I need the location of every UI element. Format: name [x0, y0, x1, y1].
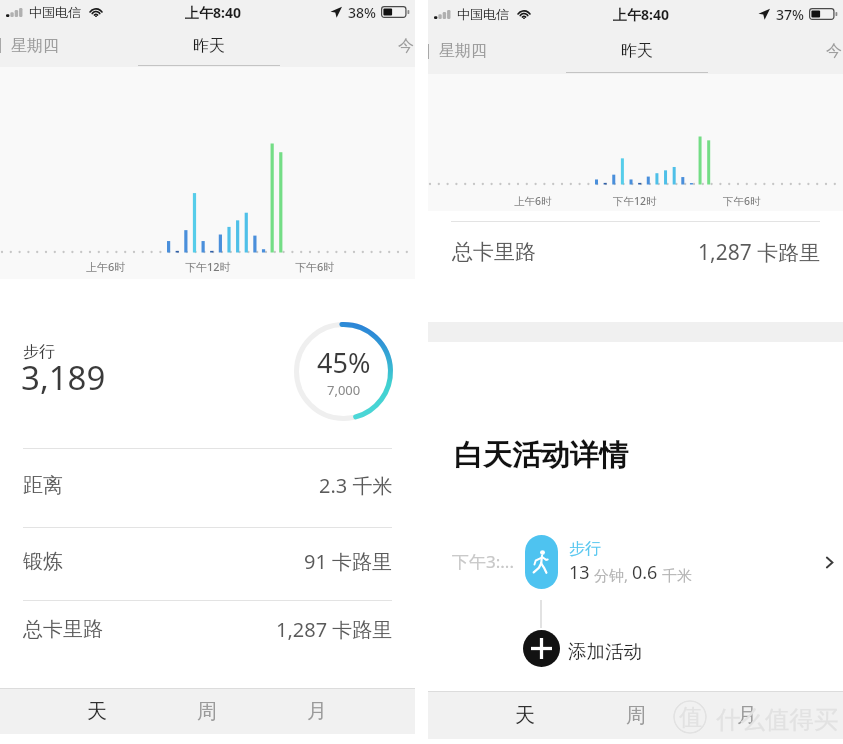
- button[interactable]: 总卡里路: [428, 222, 843, 286]
- staticText: 38%: [348, 3, 376, 22]
- button[interactable]: 星期四: [0, 24, 138, 67]
- staticText: 周: [626, 703, 646, 728]
- staticText: 值: [679, 703, 702, 732]
- staticText: 3,189: [21, 355, 106, 400]
- staticText: 上午8:40: [613, 5, 669, 24]
- button[interactable]: 距离: [0, 449, 415, 527]
- staticText: 月: [737, 703, 757, 728]
- staticText: 下午3:...: [452, 550, 514, 573]
- button[interactable]: 昨天: [566, 28, 708, 74]
- staticText: 总卡里路: [452, 239, 536, 265]
- staticText: 白天活动详情: [454, 437, 628, 474]
- staticText: 天: [87, 699, 107, 724]
- staticText: 昨天: [193, 36, 225, 56]
- staticText: 45%: [317, 344, 371, 381]
- staticText: 13: [569, 560, 590, 585]
- button[interactable]: 周: [606, 691, 666, 739]
- staticText: 锻炼: [23, 549, 63, 574]
- button[interactable]: 周: [177, 688, 237, 734]
- button[interactable]: 下午3:...: [428, 532, 843, 600]
- staticText: 步行: [569, 539, 601, 559]
- staticText: 月: [307, 699, 327, 724]
- staticText: 上午6时: [86, 259, 126, 274]
- staticText: 星期四: [11, 36, 59, 56]
- staticText: 上午8:40: [185, 3, 241, 22]
- other: 查看活动详情: [826, 557, 833, 568]
- staticText: 1,287 卡路里: [276, 616, 393, 643]
- staticText: 昨天: [621, 41, 653, 61]
- button[interactable]: 锻炼: [0, 528, 415, 600]
- button[interactable]: 今: [708, 28, 843, 74]
- staticText: 距离: [23, 473, 63, 498]
- button[interactable]: 天: [67, 688, 127, 734]
- staticText: 添加活动: [568, 640, 642, 663]
- button[interactable]: 今: [280, 24, 415, 67]
- staticText: 周: [197, 699, 217, 724]
- staticText: 91 卡路里: [304, 548, 393, 575]
- staticText: 1,287 卡路里: [698, 238, 821, 267]
- staticText: 总卡里路: [23, 617, 103, 642]
- staticText: 天: [515, 703, 535, 728]
- button[interactable]: 添加活动: [428, 628, 843, 668]
- staticText: 中国电信: [457, 6, 509, 22]
- staticText: 下午6时: [295, 259, 335, 274]
- staticText: 今: [826, 41, 842, 61]
- staticText: 星期四: [439, 41, 487, 61]
- button[interactable]: 星期四: [428, 28, 566, 74]
- staticText: 步行: [23, 342, 55, 362]
- button[interactable]: 总卡里路: [0, 601, 415, 663]
- button[interactable]: 天: [495, 691, 555, 739]
- staticText: 什么值得买: [716, 704, 839, 735]
- button[interactable]: 月: [287, 688, 347, 734]
- staticText: 千米: [658, 565, 692, 585]
- staticText: 下午12时: [185, 259, 231, 274]
- button[interactable]: 昨天: [138, 24, 280, 67]
- button[interactable]: 月: [717, 691, 777, 739]
- staticText: 分钟,: [590, 565, 632, 585]
- staticText: 中国电信: [29, 4, 81, 20]
- staticText: 上午6时: [514, 194, 552, 208]
- staticText: 0.6: [632, 560, 658, 585]
- staticText: 今: [398, 36, 414, 56]
- staticText: 下午12时: [613, 194, 657, 208]
- staticText: 37%: [776, 5, 804, 24]
- staticText: 7,000: [327, 381, 361, 399]
- staticText: 下午6时: [723, 194, 761, 208]
- staticText: 2.3 千米: [319, 472, 393, 499]
